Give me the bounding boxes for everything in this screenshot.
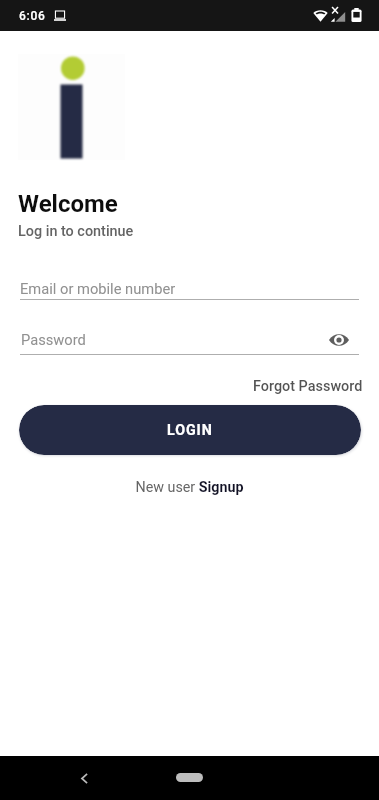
button[interactable]: Forgot Password xyxy=(247,374,369,399)
button[interactable]: Home xyxy=(176,773,203,782)
staticText: Welcome xyxy=(18,190,118,218)
staticText: Log in to continue xyxy=(18,223,134,240)
staticText: Email or mobile number xyxy=(20,280,176,297)
staticText: Password xyxy=(21,331,86,348)
staticText: Forgot Password xyxy=(253,378,363,395)
button[interactable]: Show password xyxy=(325,326,353,354)
button[interactable]: Email or mobile number xyxy=(20,272,359,300)
button[interactable]: Password xyxy=(20,327,359,355)
button[interactable]: LOGIN xyxy=(19,405,361,455)
staticText: New user Signup xyxy=(135,479,244,496)
staticText: LOGIN xyxy=(167,422,213,439)
button[interactable]: New user Signup xyxy=(129,475,250,500)
button[interactable]: Back xyxy=(72,766,97,791)
staticText: 6:06 xyxy=(19,9,46,23)
